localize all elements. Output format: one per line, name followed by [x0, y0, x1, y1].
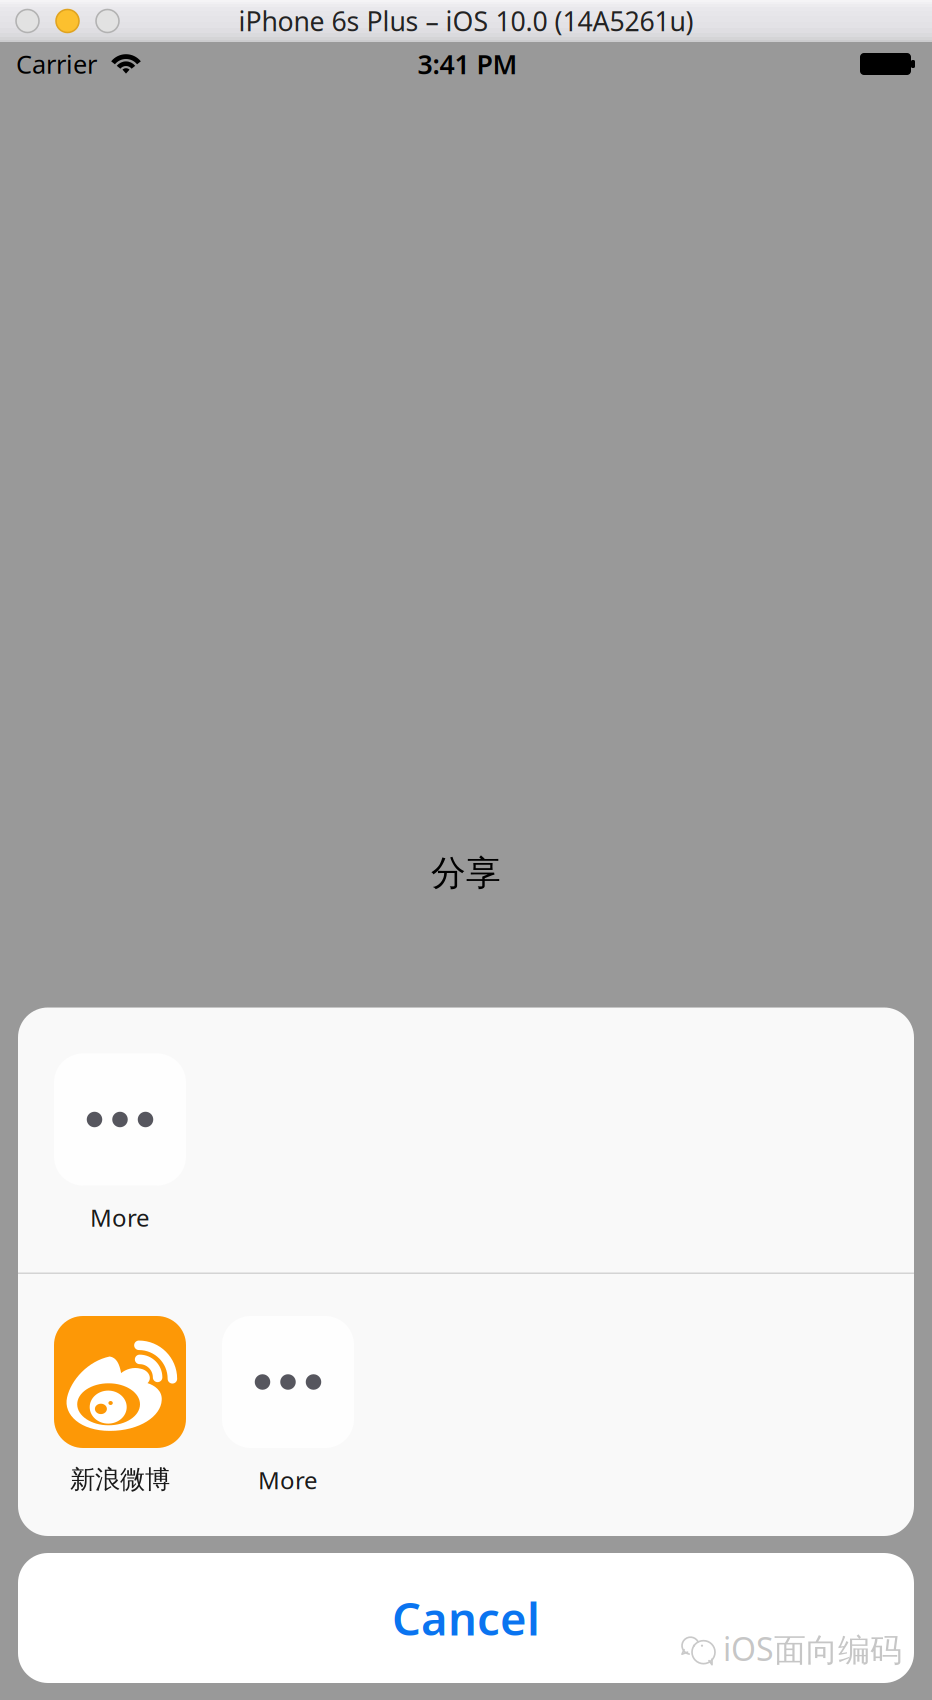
staticText: More: [90, 1201, 150, 1233]
button[interactable]: Cancel: [18, 1553, 914, 1683]
staticText: More: [258, 1464, 318, 1496]
staticText: Cancel: [392, 1588, 540, 1648]
staticText: Carrier: [16, 47, 97, 81]
staticText: 3:41 PM: [417, 46, 517, 82]
button[interactable]: 新浪微博: [36, 1316, 204, 1536]
button[interactable]: More: [204, 1316, 372, 1536]
button[interactable]: More: [36, 1053, 204, 1272]
staticText: 新浪微博: [70, 1464, 170, 1495]
staticText: 分享: [431, 852, 501, 894]
staticText: iOS面向编码: [723, 1627, 902, 1670]
staticText: iPhone 6s Plus – iOS 10.0 (14A5261u): [238, 3, 693, 39]
